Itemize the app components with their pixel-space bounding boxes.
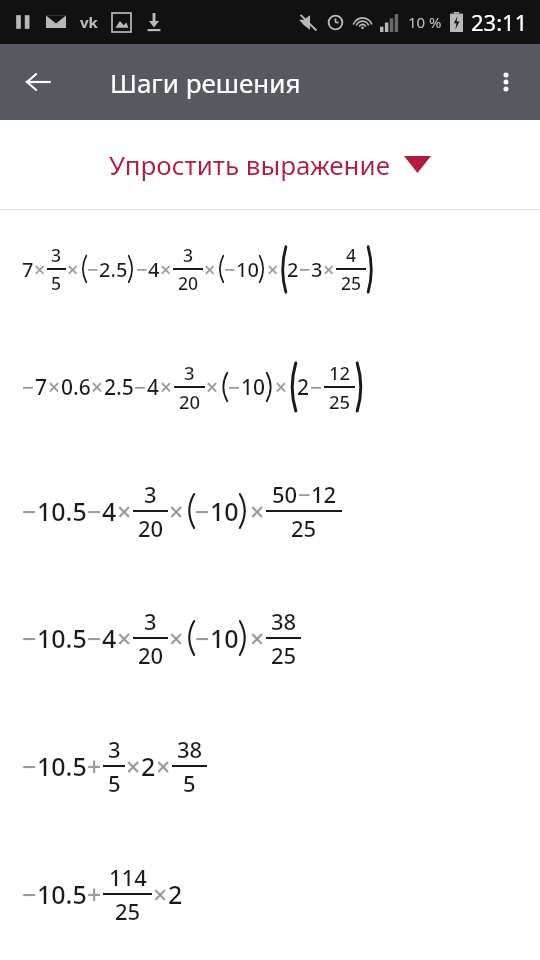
staticText: 4 [147, 373, 160, 402]
staticText: 2 [297, 373, 310, 402]
staticText: 4 [346, 243, 357, 267]
staticText: 25 [329, 389, 351, 414]
staticText: × [169, 621, 184, 655]
staticText: × [250, 494, 265, 528]
staticText: × [117, 621, 132, 655]
staticText: 10 [241, 373, 266, 402]
staticText: × [206, 373, 219, 402]
staticText: 3 [183, 243, 194, 267]
staticText: − [195, 621, 210, 655]
staticText: × [204, 256, 216, 283]
staticText: × [156, 749, 171, 783]
button[interactable]: Упростить выражение [0, 120, 540, 209]
staticText: + [87, 877, 102, 911]
staticText: 10 [210, 621, 239, 655]
staticText: 2 [141, 749, 156, 783]
staticText: 3 [108, 734, 121, 764]
staticText: 10.5 [37, 877, 87, 911]
staticText: 2.5 [99, 256, 128, 283]
staticText: 2 [287, 256, 299, 283]
staticText: − [22, 494, 37, 528]
staticText: 0.6 [61, 373, 91, 402]
staticText: × [117, 494, 132, 528]
staticText: 20 [178, 271, 199, 295]
staticText: × [160, 256, 172, 283]
staticText: 3 [311, 256, 323, 283]
staticText: − [224, 256, 236, 283]
staticText: 5 [108, 768, 121, 798]
staticText: 3 [144, 606, 157, 636]
staticText: 25 [341, 271, 362, 295]
staticText: 7 [35, 373, 48, 402]
staticText: − [87, 494, 102, 528]
staticText: Шаги решения [110, 65, 301, 100]
staticText: × [275, 373, 288, 402]
button[interactable]: − [0, 574, 540, 702]
staticText: 2.5 [104, 373, 134, 402]
staticText: 25 [271, 640, 297, 670]
staticText: vk [80, 12, 98, 32]
staticText: 3 [144, 479, 157, 509]
button[interactable]: − [0, 702, 540, 829]
staticText: 5 [183, 768, 196, 798]
button[interactable]: Back [14, 58, 62, 106]
staticText: 38 [177, 734, 203, 764]
staticText: × [67, 256, 79, 283]
staticText: 4 [102, 494, 117, 528]
staticText: 10.5 [37, 621, 87, 655]
staticText: − [195, 494, 210, 528]
button[interactable]: − [0, 447, 540, 574]
staticText: × [169, 494, 184, 528]
staticText: 12 [329, 360, 351, 385]
staticText: 25 [291, 513, 317, 543]
staticText: − [22, 621, 37, 655]
staticText: 50 [272, 479, 298, 509]
staticText: 10 [236, 256, 259, 283]
staticText: × [126, 749, 141, 783]
button[interactable]: − [0, 829, 540, 959]
staticText: 10.5 [37, 749, 87, 783]
staticText: × [48, 373, 61, 402]
staticText: + [87, 749, 102, 783]
staticText: − [310, 373, 323, 402]
staticText: 3 [51, 243, 62, 267]
staticText: 20 [179, 389, 201, 414]
staticText: 10.5 [37, 494, 87, 528]
staticText: × [250, 621, 265, 655]
staticText: 2 [168, 877, 183, 911]
staticText: 4 [102, 621, 117, 655]
staticText: 114 [109, 862, 147, 892]
staticText: Упростить выражение [109, 147, 390, 182]
staticText: 38 [271, 606, 297, 636]
staticText: − [134, 373, 147, 402]
staticText: 20 [138, 640, 164, 670]
staticText: × [267, 256, 279, 283]
staticText: − [22, 373, 35, 402]
staticText: 5 [51, 271, 62, 295]
staticText: 25 [115, 896, 141, 926]
staticText: × [160, 373, 173, 402]
staticText: × [323, 256, 335, 283]
staticText: − [22, 749, 37, 783]
staticText: − [228, 373, 241, 402]
staticText: 7 [22, 256, 34, 283]
button[interactable]: More options [482, 58, 530, 106]
staticText: 10 [210, 494, 239, 528]
staticText: 3 [184, 360, 195, 385]
staticText: 4 [148, 256, 160, 283]
staticText: − [22, 877, 37, 911]
staticText: − [136, 256, 148, 283]
staticText: − [298, 479, 311, 509]
staticText: × [91, 373, 104, 402]
staticText: × [34, 256, 46, 283]
staticText: 10 % [408, 12, 442, 32]
button[interactable]: − [0, 327, 540, 447]
staticText: 20 [138, 513, 164, 543]
staticText: 12 [311, 479, 337, 509]
staticText: − [87, 256, 99, 283]
staticText: − [87, 621, 102, 655]
staticText: × [153, 877, 168, 911]
staticText: − [299, 256, 311, 283]
staticText: 23:11 [471, 7, 528, 37]
button[interactable]: 7 [0, 210, 540, 327]
